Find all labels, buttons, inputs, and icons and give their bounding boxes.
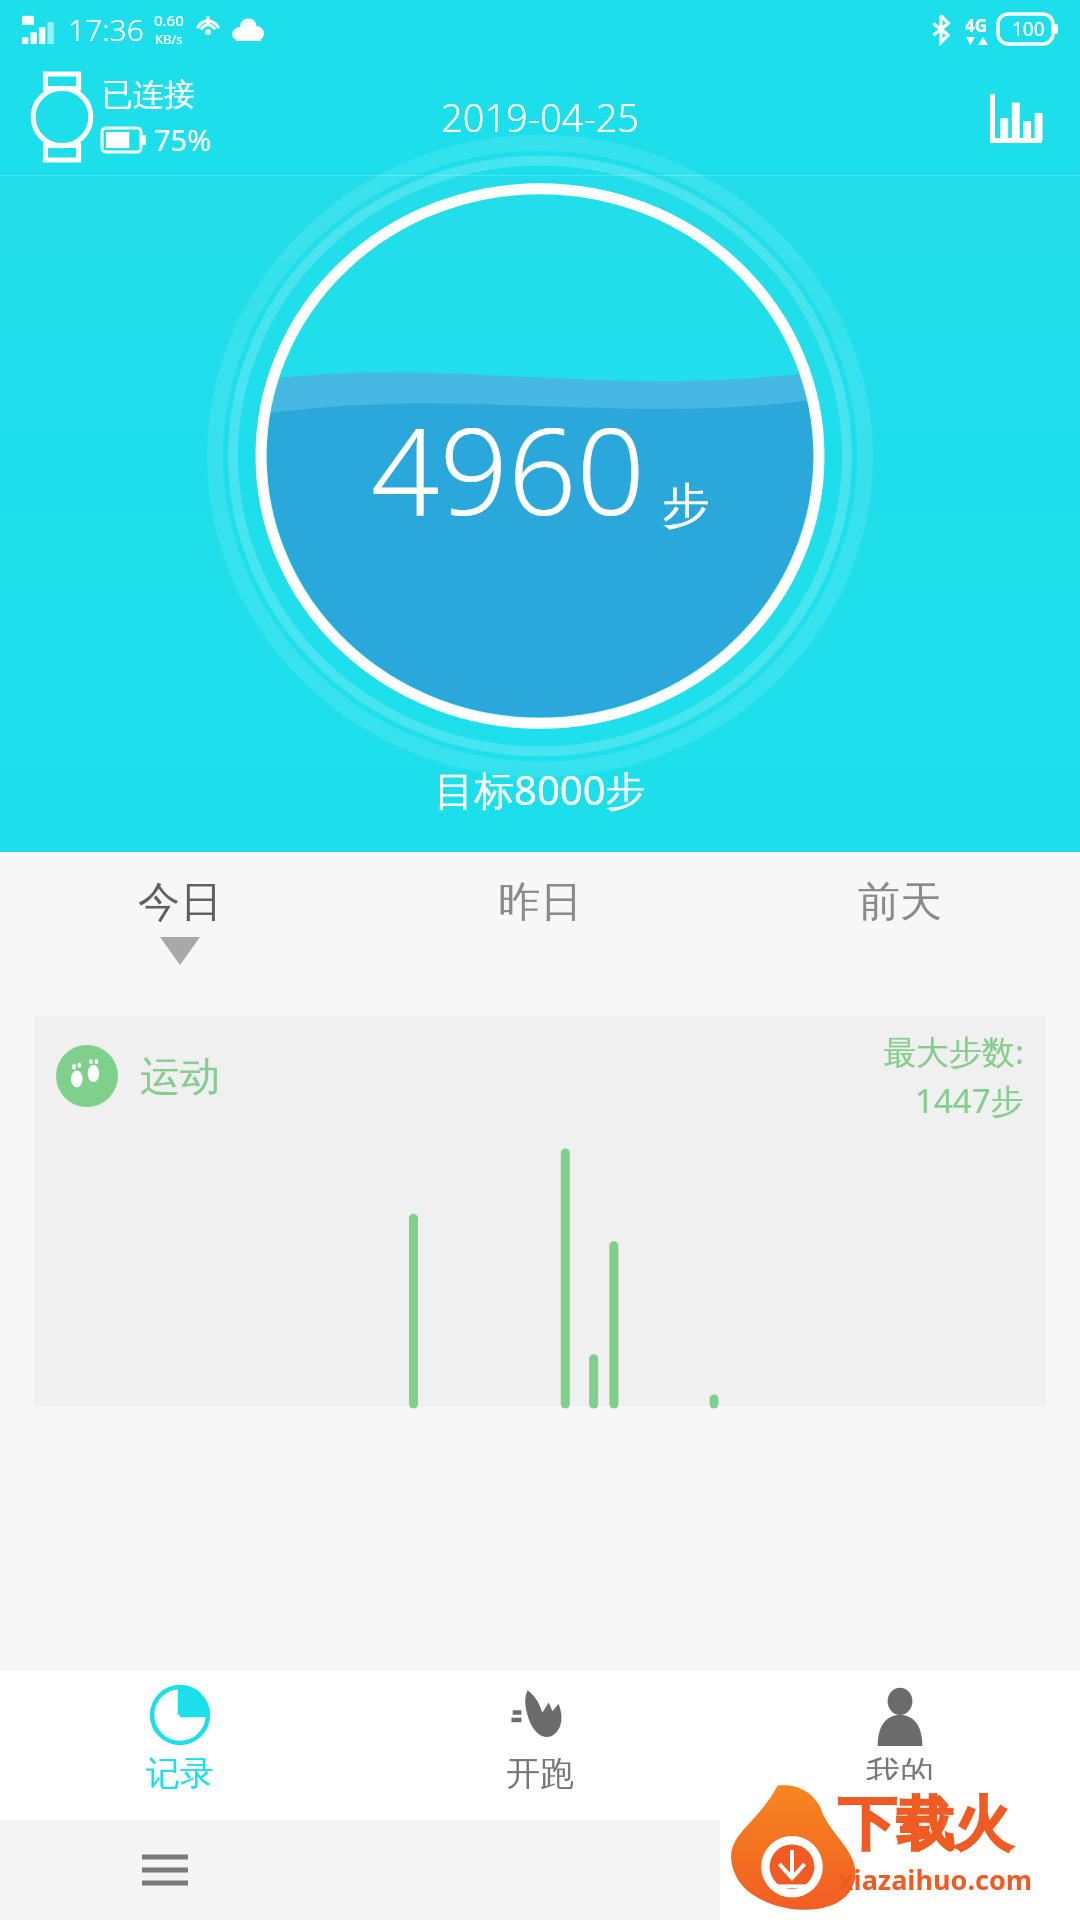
button[interactable]: 开跑 bbox=[360, 1670, 720, 1820]
staticText: 1447步 bbox=[915, 1078, 1024, 1123]
staticText: 记录 bbox=[146, 1752, 214, 1795]
staticText: 前天 bbox=[858, 876, 942, 929]
button[interactable]: 今日 bbox=[0, 852, 360, 1002]
staticText: 步 bbox=[662, 476, 710, 536]
button[interactable]: 记录 bbox=[0, 1670, 360, 1820]
button[interactable]: Statistics bbox=[980, 81, 1052, 153]
staticText: 目标8000步 bbox=[434, 762, 646, 817]
staticText: 运动 bbox=[140, 1051, 220, 1101]
staticText: 0.60 bbox=[154, 10, 184, 30]
button[interactable]: 前天 bbox=[720, 852, 1080, 1002]
staticText: 75% bbox=[154, 120, 212, 159]
staticText: 4G bbox=[965, 14, 988, 37]
button[interactable]: 运动 bbox=[34, 1016, 1046, 1406]
button[interactable]: 昨日 bbox=[360, 852, 720, 1002]
staticText: 今日 bbox=[138, 876, 222, 929]
staticText: xiazaihuo.com bbox=[838, 1861, 1033, 1898]
staticText: 17:36 bbox=[68, 9, 144, 50]
button[interactable]: Home bbox=[870, 1825, 960, 1915]
button[interactable]: Recents bbox=[120, 1825, 210, 1915]
staticText: 开跑 bbox=[506, 1752, 574, 1795]
staticText: KB/s bbox=[155, 30, 183, 48]
button[interactable]: 已连接 bbox=[26, 74, 212, 160]
staticText: 最大步数: bbox=[883, 1029, 1024, 1074]
staticText: 100 bbox=[1012, 16, 1045, 42]
staticText: 我的 bbox=[866, 1752, 934, 1795]
staticText: 昨日 bbox=[498, 876, 582, 929]
staticText: 已连接 bbox=[102, 75, 195, 114]
button[interactable]: 我的 bbox=[720, 1670, 1080, 1820]
staticText: 2019-04-25 bbox=[441, 91, 640, 143]
staticText: 4960 bbox=[371, 387, 646, 550]
staticText: 下载火 bbox=[838, 1788, 1012, 1861]
